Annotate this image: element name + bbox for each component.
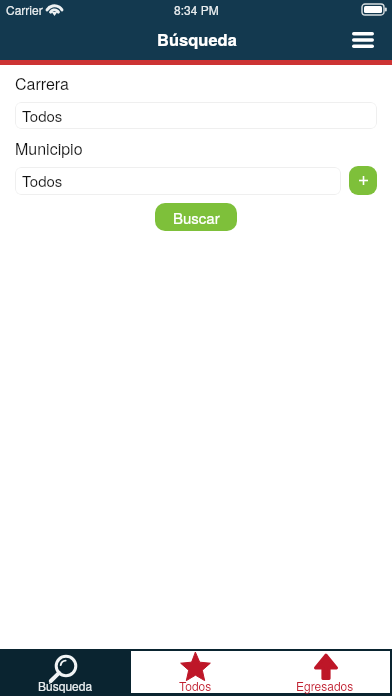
other: Search [50, 650, 82, 682]
staticText: Búsqueda [157, 27, 237, 51]
staticText: Búsqueda [38, 677, 93, 694]
staticText: Buscar [173, 207, 220, 228]
other: Todos [180, 651, 212, 683]
staticText: Carrera [15, 72, 69, 95]
button[interactable]: Todos [131, 651, 260, 693]
button[interactable]: Add [349, 166, 377, 195]
button[interactable]: Menu [339, 21, 387, 59]
staticText: Todos [22, 105, 63, 126]
button[interactable]: Search [0, 651, 131, 693]
button[interactable]: Todos [15, 102, 377, 129]
staticText: 8:34 PM [174, 1, 219, 18]
button[interactable]: Todos [15, 167, 341, 195]
staticText: Egresados [296, 677, 354, 694]
staticText: Todos [179, 677, 212, 694]
button[interactable]: Egresados [260, 651, 390, 693]
staticText: Todos [22, 170, 63, 191]
button[interactable]: Buscar [155, 203, 237, 231]
other: Egresados [309, 651, 341, 683]
staticText: Carrier [6, 1, 43, 18]
staticText: Municipio [15, 137, 83, 160]
